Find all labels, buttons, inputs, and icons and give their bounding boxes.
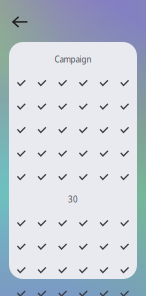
staticText: Campaign [54, 54, 91, 65]
staticText: 30 [68, 194, 78, 205]
button[interactable]: Back [7, 11, 34, 33]
